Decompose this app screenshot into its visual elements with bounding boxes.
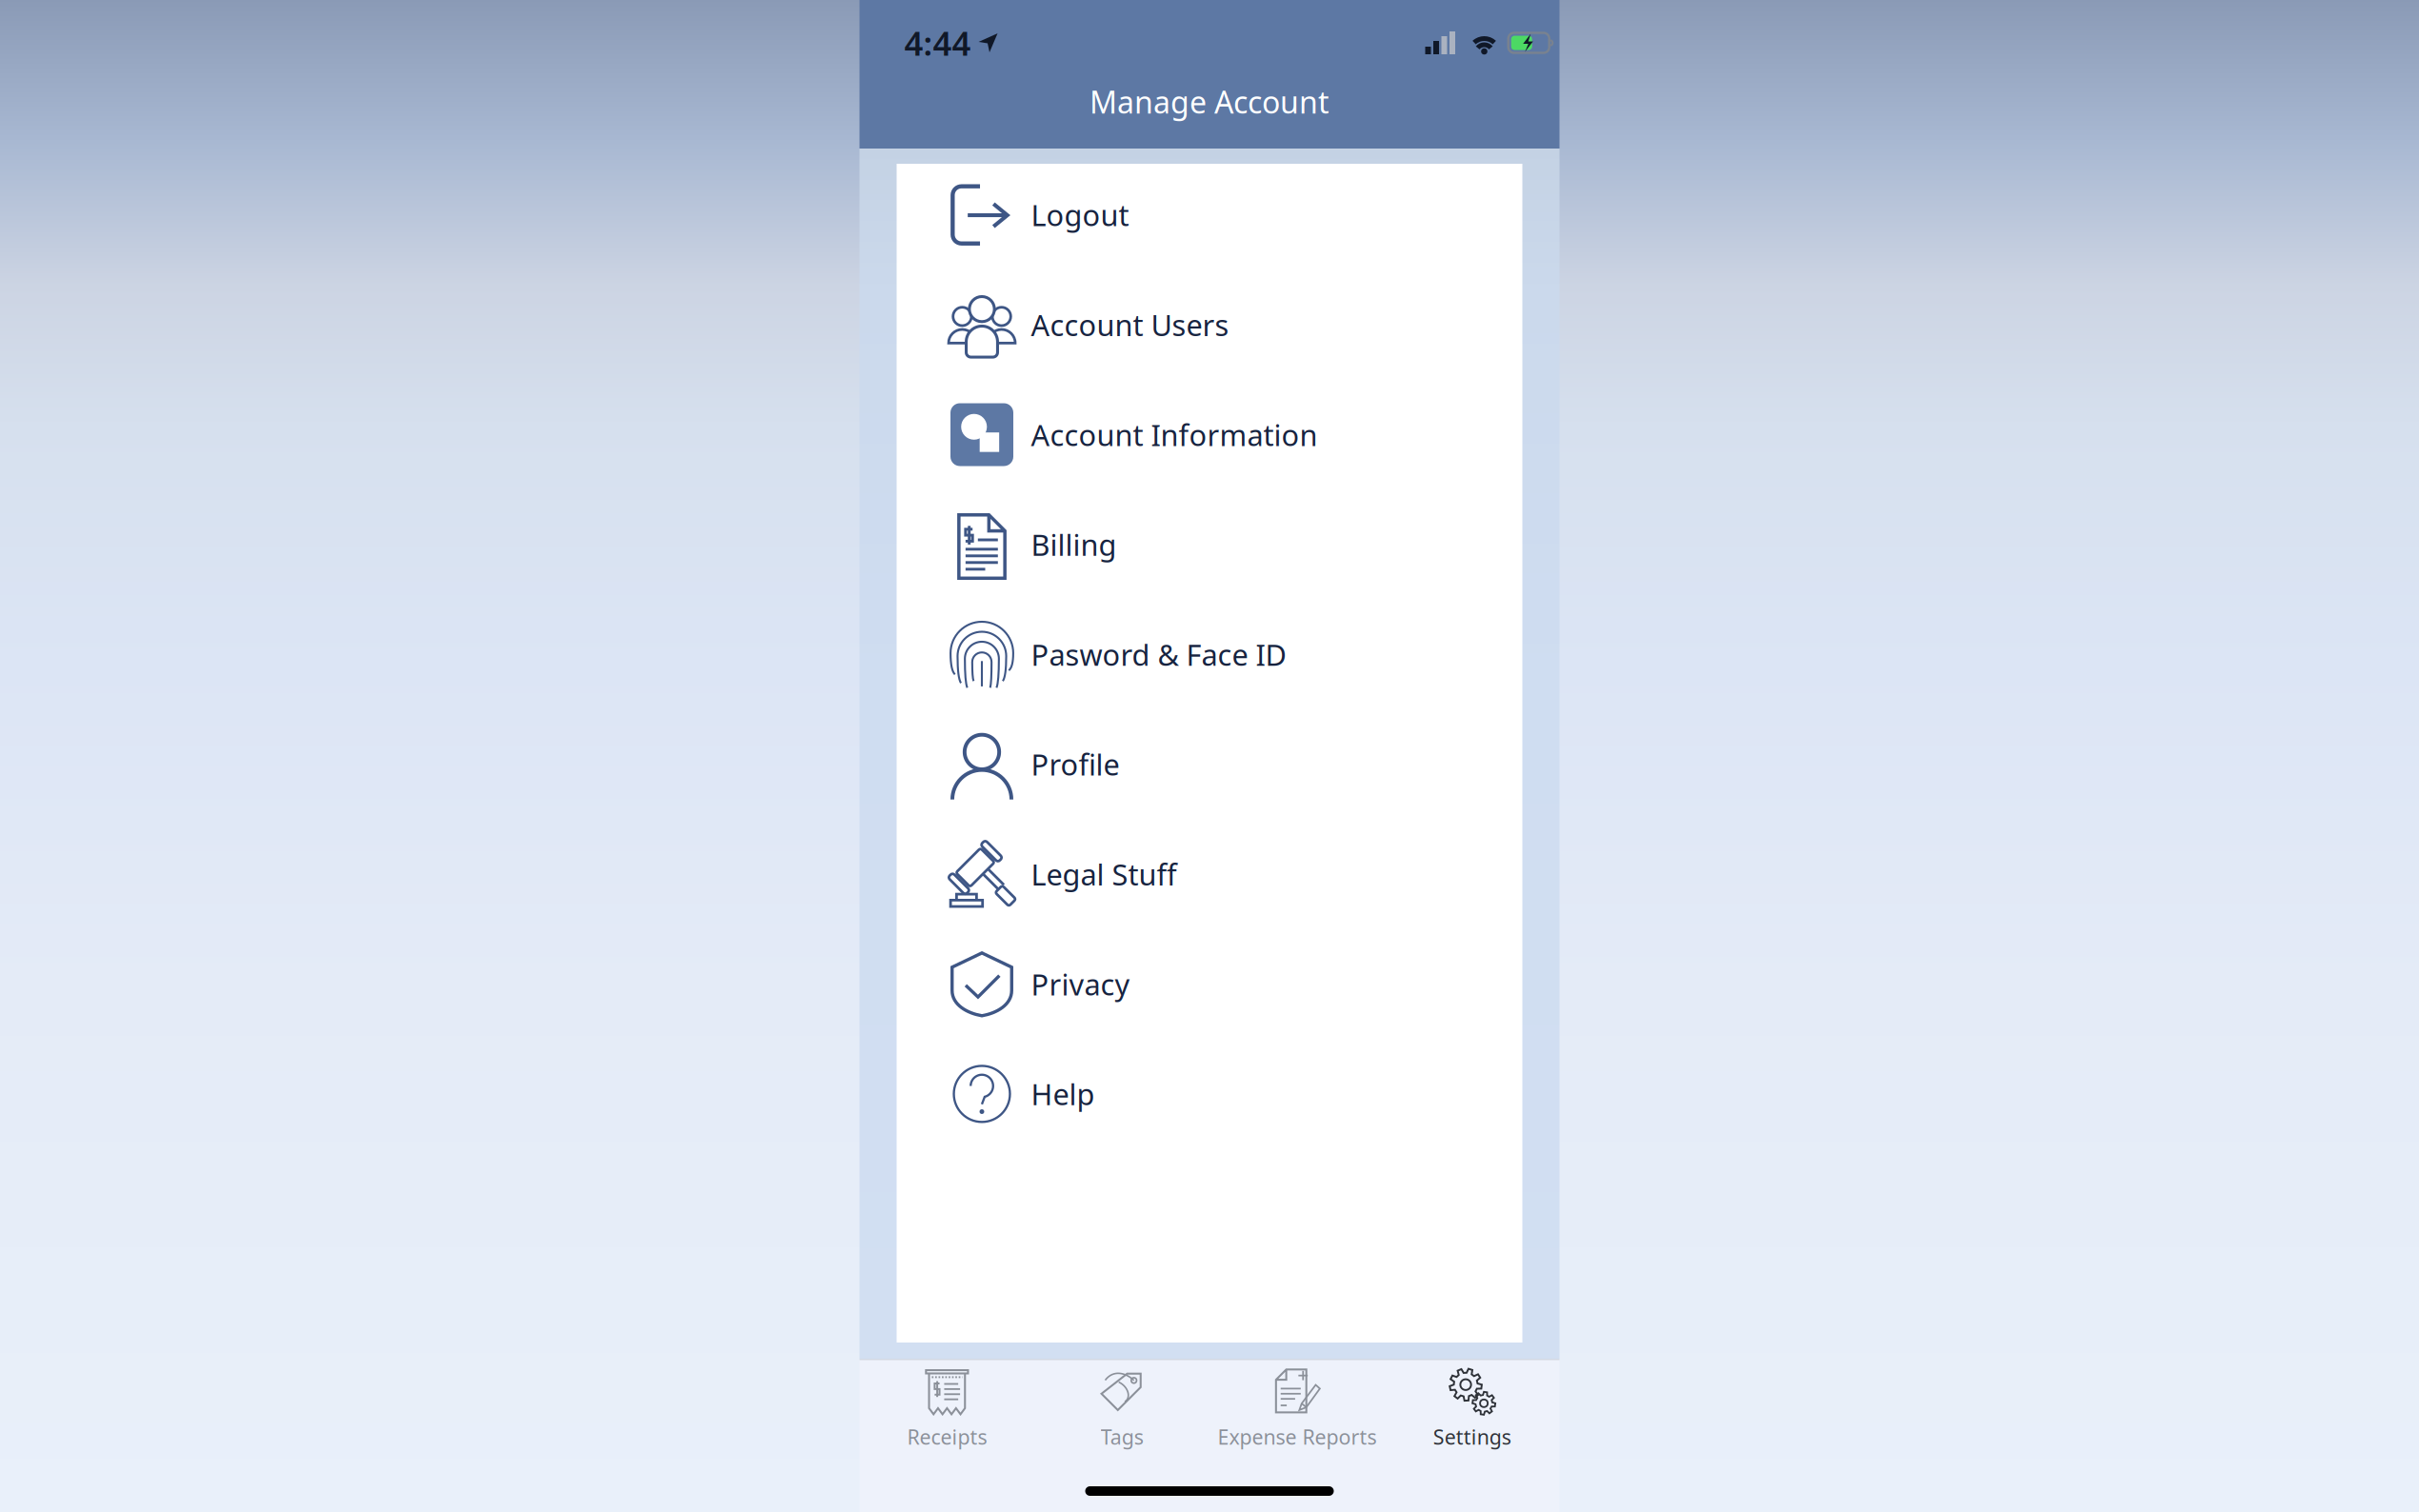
- button[interactable]: Billing: [897, 490, 1522, 599]
- button[interactable]: Profile: [897, 709, 1522, 819]
- staticText: Privacy: [1031, 965, 1130, 1003]
- button[interactable]: Tags: [1034, 1364, 1209, 1454]
- staticText: Tags: [1101, 1423, 1143, 1450]
- staticText: Receipts: [907, 1423, 987, 1450]
- staticText: Legal Stuff: [1031, 855, 1177, 893]
- button[interactable]: Settings: [1385, 1364, 1560, 1454]
- staticText: Account Information: [1031, 415, 1318, 454]
- staticText: 4:44: [904, 21, 971, 65]
- button[interactable]: Help: [897, 1039, 1522, 1149]
- staticText: Account Users: [1031, 305, 1229, 344]
- button[interactable]: Legal Stuff: [897, 819, 1522, 929]
- button[interactable]: Pasword & Face ID: [897, 599, 1522, 709]
- button[interactable]: Account Information: [897, 380, 1522, 490]
- staticText: Profile: [1031, 745, 1120, 784]
- staticText: Logout: [1031, 195, 1129, 234]
- staticText: Manage Account: [1090, 81, 1329, 122]
- staticText: Settings: [1433, 1423, 1511, 1450]
- button[interactable]: Receipts: [860, 1364, 1035, 1454]
- button[interactable]: Account Users: [897, 270, 1522, 380]
- button[interactable]: Expense Reports: [1209, 1364, 1385, 1454]
- staticText: Help: [1031, 1074, 1095, 1113]
- button[interactable]: Privacy: [897, 929, 1522, 1039]
- staticText: Pasword & Face ID: [1031, 635, 1286, 674]
- staticText: Expense Reports: [1217, 1423, 1377, 1450]
- button[interactable]: Logout: [897, 160, 1522, 270]
- staticText: Billing: [1031, 525, 1117, 564]
